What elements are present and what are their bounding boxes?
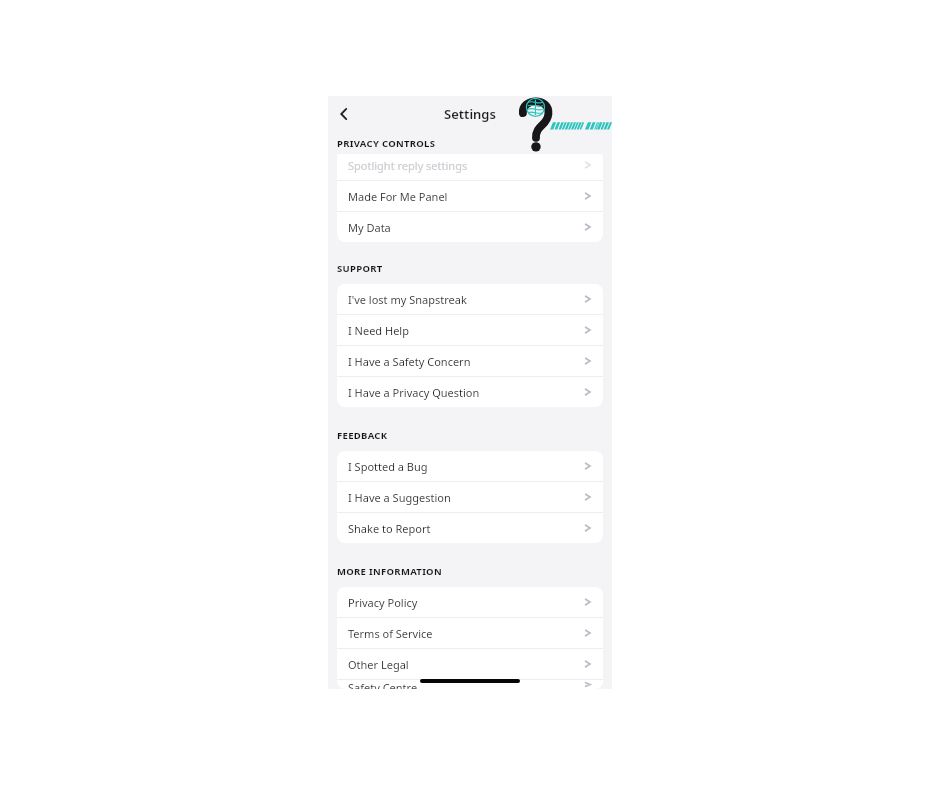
staticText: Shake to Report — [348, 521, 583, 536]
button[interactable]: Made For Me Panel — [337, 181, 603, 211]
staticText: My Data — [348, 220, 583, 235]
staticText: Safety Centre — [348, 680, 583, 689]
button[interactable]: Spotlight reply settings — [337, 150, 603, 180]
staticText: I Have a Privacy Question — [348, 385, 583, 400]
button[interactable]: I've lost my Snapstreak — [337, 284, 603, 314]
button[interactable]: I Have a Suggestion — [337, 482, 603, 512]
staticText: MORE INFORMATION — [337, 565, 442, 578]
button[interactable]: Back — [330, 100, 358, 128]
staticText: SUPPORT — [337, 262, 383, 275]
button[interactable]: My Data — [337, 212, 603, 242]
staticText: Terms of Service — [348, 626, 583, 641]
button[interactable]: Shake to Report — [337, 513, 603, 543]
button[interactable]: I Need Help — [337, 315, 603, 345]
button[interactable]: Privacy Policy — [337, 587, 603, 617]
staticText: I've lost my Snapstreak — [348, 292, 583, 307]
staticText: Settings — [444, 105, 496, 123]
staticText: Made For Me Panel — [348, 189, 583, 204]
button[interactable]: I Have a Privacy Question — [337, 377, 603, 407]
staticText: I Have a Suggestion — [348, 490, 583, 505]
staticText: PRIVACY CONTROLS — [337, 137, 436, 150]
staticText: I Need Help — [348, 323, 583, 338]
button[interactable]: Other Legal — [337, 649, 603, 679]
staticText: Privacy Policy — [348, 595, 583, 610]
button[interactable]: Safety Centre — [337, 680, 603, 689]
button[interactable]: Terms of Service — [337, 618, 603, 648]
staticText: Spotlight reply settings — [348, 158, 583, 173]
button[interactable]: I Have a Safety Concern — [337, 346, 603, 376]
staticText: FEEDBACK — [337, 429, 388, 442]
staticText: Other Legal — [348, 657, 583, 672]
staticText: I Spotted a Bug — [348, 459, 583, 474]
button[interactable]: I Spotted a Bug — [337, 451, 603, 481]
staticText: I Have a Safety Concern — [348, 354, 583, 369]
